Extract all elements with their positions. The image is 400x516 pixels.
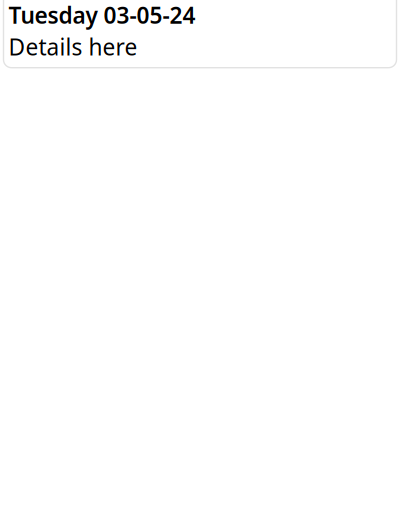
staticText: Tuesday 03-05-24 bbox=[8, 0, 195, 30]
staticText: Details here bbox=[8, 32, 137, 62]
button[interactable]: Tuesday 03-05-24 bbox=[3, 0, 396, 68]
